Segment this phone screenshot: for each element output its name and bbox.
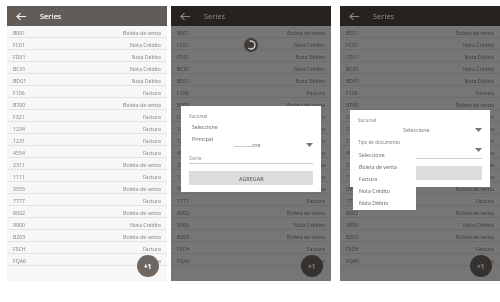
button[interactable]: 5555 bbox=[7, 182, 167, 194]
button[interactable]: Nota Débito bbox=[353, 196, 416, 208]
staticText: Nota Crédito bbox=[130, 65, 161, 72]
button[interactable]: FD01 bbox=[340, 50, 500, 62]
button[interactable]: B203 bbox=[340, 230, 500, 242]
button[interactable]: FQA6 bbox=[340, 254, 500, 266]
button[interactable]: 2311 bbox=[340, 158, 500, 170]
button[interactable]: 9900 bbox=[340, 218, 500, 230]
staticText: Boleta de venta bbox=[287, 161, 325, 168]
button[interactable]: Seleccione bbox=[353, 148, 416, 160]
button[interactable]: F321 bbox=[171, 110, 331, 122]
button[interactable]: 5555 bbox=[340, 182, 500, 194]
button[interactable]: FD01 bbox=[7, 50, 167, 62]
button[interactable]: FD01 bbox=[171, 50, 331, 62]
button[interactable]: 1231 bbox=[171, 134, 331, 146]
button[interactable]: Back bbox=[14, 9, 28, 23]
staticText: F106 bbox=[13, 89, 25, 96]
staticText: BD01 bbox=[346, 77, 360, 84]
button[interactable]: Seleccione bbox=[358, 126, 482, 133]
staticText: FD01 bbox=[177, 53, 190, 60]
staticText: 1111 bbox=[346, 173, 358, 180]
button[interactable]: 1234 bbox=[340, 122, 500, 134]
staticText: 7777 bbox=[13, 197, 25, 204]
staticText: Seleccione bbox=[359, 151, 385, 158]
button[interactable]: B700 bbox=[171, 98, 331, 110]
staticText: Boleta de venta bbox=[456, 185, 494, 192]
button[interactable]: BC01 bbox=[7, 62, 167, 74]
button[interactable] bbox=[358, 166, 482, 180]
button[interactable]: Agregar serie bbox=[470, 255, 492, 277]
staticText: Nota Débito bbox=[295, 77, 325, 84]
button[interactable]: F321 bbox=[340, 110, 500, 122]
button[interactable]: 7777 bbox=[7, 194, 167, 206]
button[interactable]: 2311 bbox=[171, 158, 331, 170]
button[interactable]: 4554 bbox=[340, 146, 500, 158]
button[interactable]: AGREGAR bbox=[189, 171, 313, 185]
button[interactable]: B700 bbox=[7, 98, 167, 110]
button[interactable]: 8002 bbox=[7, 206, 167, 218]
button[interactable]: BC01 bbox=[340, 62, 500, 74]
staticText: Nota Crédito bbox=[359, 187, 390, 194]
button[interactable]: Agregar serie bbox=[137, 255, 159, 277]
button[interactable]: B001 bbox=[340, 26, 500, 38]
staticText: B203 bbox=[346, 233, 359, 240]
button[interactable]: 7777 bbox=[340, 194, 500, 206]
button[interactable]: 1234 bbox=[171, 122, 331, 134]
button[interactable] bbox=[358, 148, 482, 152]
button[interactable]: 1234 bbox=[7, 122, 167, 134]
button[interactable]: 1111 bbox=[7, 170, 167, 182]
button[interactable]: 4554 bbox=[171, 146, 331, 158]
staticText: Nota Crédito bbox=[294, 221, 325, 228]
staticText: 4554 bbox=[346, 149, 358, 156]
button[interactable]: 7777 bbox=[171, 194, 331, 206]
staticText: Nota Débito bbox=[131, 77, 161, 84]
button[interactable]: F321 bbox=[7, 110, 167, 122]
button[interactable]: Principal bbox=[186, 132, 252, 144]
button[interactable]: B203 bbox=[7, 230, 167, 242]
staticText: Boleta de venta bbox=[359, 163, 397, 170]
button[interactable]: 1111 bbox=[171, 170, 331, 182]
button[interactable]: Seleccione bbox=[186, 120, 252, 132]
button[interactable]: 9900 bbox=[7, 218, 167, 230]
button[interactable]: FC01 bbox=[340, 38, 500, 50]
button[interactable]: FC01 bbox=[171, 38, 331, 50]
button[interactable]: FSCH bbox=[340, 242, 500, 254]
button[interactable]: 4554 bbox=[7, 146, 167, 158]
button[interactable]: FC01 bbox=[7, 38, 167, 50]
staticText: 2311 bbox=[177, 161, 189, 168]
button[interactable]: BD01 bbox=[171, 74, 331, 86]
button[interactable]: F106 bbox=[7, 86, 167, 98]
button[interactable]: FSCH bbox=[7, 242, 167, 254]
button[interactable]: Back bbox=[178, 9, 192, 23]
button[interactable]: FQA6 bbox=[7, 254, 167, 266]
button[interactable]: BD01 bbox=[7, 74, 167, 86]
button[interactable]: F106 bbox=[340, 86, 500, 98]
button[interactable]: 1231 bbox=[340, 134, 500, 146]
button[interactable]: B203 bbox=[171, 230, 331, 242]
staticText: 4554 bbox=[177, 149, 189, 156]
button[interactable]: B001 bbox=[7, 26, 167, 38]
button[interactable]: FSCH bbox=[171, 242, 331, 254]
button[interactable]: 5555 bbox=[171, 182, 331, 194]
button[interactable]: 2311 bbox=[7, 158, 167, 170]
button[interactable]: 9900 bbox=[171, 218, 331, 230]
staticText: 4554 bbox=[13, 149, 25, 156]
button[interactable]: FQA6 bbox=[171, 254, 331, 266]
button[interactable]: F106 bbox=[171, 86, 331, 98]
staticText: Factura bbox=[142, 197, 161, 204]
button[interactable]: 8002 bbox=[340, 206, 500, 218]
button[interactable]: Boleta de venta bbox=[353, 160, 416, 172]
button[interactable]: Agregar serie bbox=[301, 255, 323, 277]
button[interactable]: B700 bbox=[340, 98, 500, 110]
button[interactable]: Factura bbox=[353, 172, 416, 184]
button[interactable]: 1231 bbox=[7, 134, 167, 146]
staticText: FQA6 bbox=[346, 257, 359, 264]
button[interactable]: BC01 bbox=[171, 62, 331, 74]
button[interactable]: Seleccione bbox=[189, 141, 313, 148]
button[interactable]: BD01 bbox=[340, 74, 500, 86]
button[interactable]: Back bbox=[347, 9, 361, 23]
button[interactable]: 1111 bbox=[340, 170, 500, 182]
button[interactable]: Nota Crédito bbox=[353, 184, 416, 196]
button[interactable]: B001 bbox=[171, 26, 331, 38]
button[interactable]: 8002 bbox=[171, 206, 331, 218]
staticText: F321 bbox=[13, 113, 25, 120]
